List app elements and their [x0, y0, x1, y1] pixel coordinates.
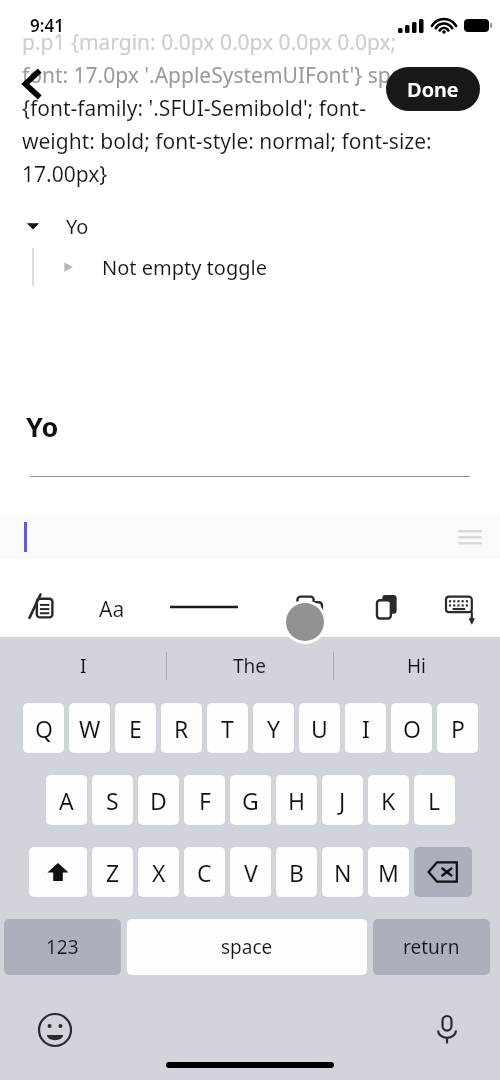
staticText: space [221, 934, 273, 960]
button[interactable]: Insert photo [288, 585, 332, 629]
button[interactable]: J [322, 775, 363, 825]
button[interactable]: space [127, 919, 367, 975]
button[interactable]: V [230, 847, 271, 897]
button[interactable]: G [230, 775, 271, 825]
button[interactable]: Emoji [32, 1007, 78, 1053]
staticText: Hi [407, 653, 426, 679]
button[interactable]: Y [253, 703, 294, 753]
staticText: O [403, 713, 421, 744]
button[interactable]: Backspace [414, 847, 472, 897]
staticText: R [174, 713, 189, 744]
button[interactable]: F [184, 775, 225, 825]
button[interactable]: B [276, 847, 317, 897]
button[interactable]: O [391, 703, 432, 753]
button[interactable]: The [166, 637, 333, 695]
button[interactable]: Z [92, 847, 133, 897]
button[interactable]: I [0, 637, 166, 695]
button[interactable]: M [368, 847, 409, 897]
staticText: Yo [66, 213, 89, 240]
staticText: weight: bold; font-style: normal; font-s… [22, 127, 492, 156]
button[interactable]: Aa [88, 585, 136, 633]
staticText: Not empty toggle [102, 254, 267, 281]
staticText: D [150, 785, 167, 816]
staticText: E [129, 713, 142, 744]
button[interactable]: 123 [4, 919, 121, 975]
staticText: {font-family: '.SFUI-Semibold'; font- [22, 94, 492, 123]
button[interactable]: Hi [333, 637, 500, 695]
staticText: M [378, 857, 399, 888]
staticText: return [403, 934, 460, 960]
button[interactable]: R [161, 703, 202, 753]
other: Backspace [428, 861, 458, 883]
button[interactable]: H [276, 775, 317, 825]
button[interactable]: S [92, 775, 133, 825]
button[interactable]: P [437, 703, 478, 753]
button[interactable]: Hide keyboard [438, 585, 484, 631]
button[interactable]: Done [386, 67, 480, 111]
staticText: A [59, 785, 74, 816]
staticText: 9:41 [30, 14, 64, 37]
button[interactable]: Markup [20, 585, 64, 629]
other: Format [458, 530, 482, 544]
button[interactable]: Not empty toggle [58, 252, 267, 282]
staticText: C [197, 857, 212, 888]
staticText: Z [106, 857, 120, 888]
staticText: W [79, 713, 101, 744]
staticText: B [289, 857, 304, 888]
button[interactable]: Q [23, 703, 64, 753]
staticText: G [242, 785, 259, 816]
button[interactable]: E [115, 703, 156, 753]
button[interactable]: D [138, 775, 179, 825]
button[interactable]: Divider [164, 585, 244, 629]
staticText: L [428, 785, 441, 816]
button[interactable]: U [299, 703, 340, 753]
staticText: 17.00px} [22, 160, 492, 189]
staticText: T [221, 713, 234, 744]
staticText: 123 [46, 934, 79, 960]
staticText: Aa [99, 595, 125, 624]
button[interactable]: L [414, 775, 455, 825]
staticText: The [233, 653, 267, 679]
staticText: H [288, 785, 306, 816]
staticText: N [334, 857, 352, 888]
button[interactable]: Dictation [424, 1007, 470, 1053]
staticText: P [451, 713, 465, 744]
staticText: F [199, 785, 211, 816]
staticText: I [362, 713, 370, 744]
button[interactable]: Yo [22, 210, 89, 242]
button[interactable]: K [368, 775, 409, 825]
staticText: Y [267, 713, 281, 744]
button[interactable]: Scan document [366, 585, 410, 629]
staticText: S [106, 785, 119, 816]
staticText: p.p1 {margin: 0.0px 0.0px 0.0px 0.0px; [22, 28, 492, 57]
button[interactable]: return [373, 919, 490, 975]
button[interactable]: T [207, 703, 248, 753]
button[interactable]: Shift [29, 847, 87, 897]
staticText: Done [407, 76, 459, 103]
other: Shift [46, 860, 70, 884]
button[interactable]: I [345, 703, 386, 753]
staticText: Yo [26, 408, 59, 445]
button[interactable]: W [69, 703, 110, 753]
button[interactable]: Back [8, 60, 56, 108]
button[interactable]: A [46, 775, 87, 825]
staticText: font: 17.0px '.AppleSystemUIFont'} span.… [22, 61, 492, 90]
staticText: I [80, 653, 87, 679]
staticText: V [244, 857, 258, 888]
staticText: U [311, 713, 328, 744]
staticText: K [381, 785, 396, 816]
button[interactable]: C [184, 847, 225, 897]
button[interactable]: N [322, 847, 363, 897]
staticText: Q [35, 713, 53, 744]
staticText: J [339, 785, 346, 816]
button[interactable]: X [138, 847, 179, 897]
staticText: X [152, 857, 166, 888]
